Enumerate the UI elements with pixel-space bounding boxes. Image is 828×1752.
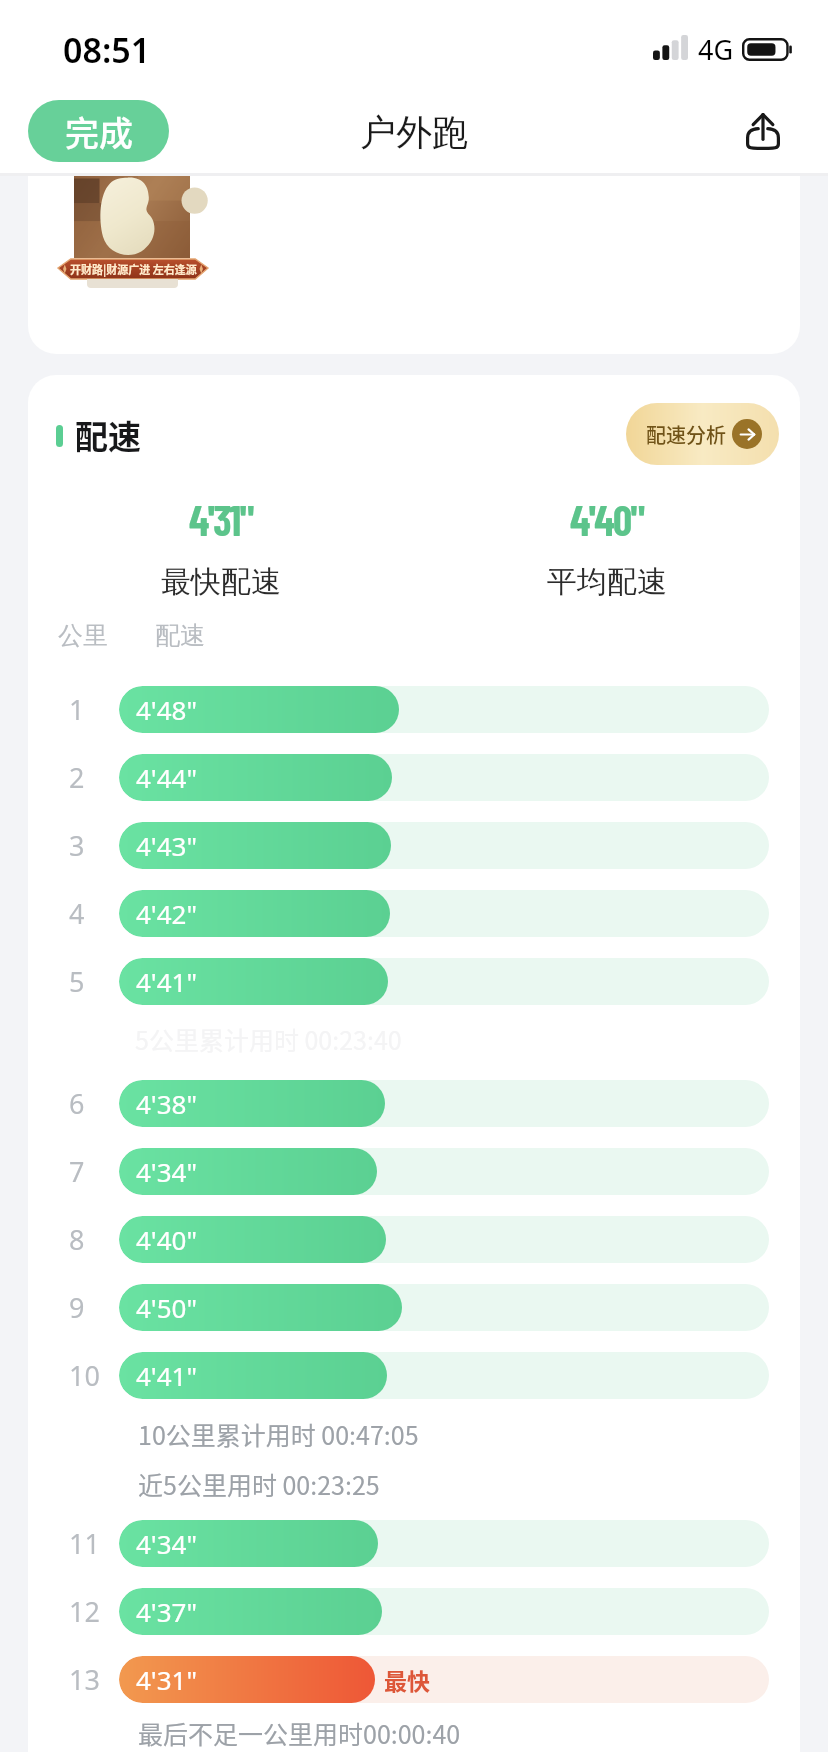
staticText: 配速 (155, 620, 205, 651)
staticText: 10 (69, 1357, 100, 1394)
button[interactable]: 9 (28, 1273, 800, 1341)
staticText: 4 (69, 895, 85, 932)
staticText: 4'40" (136, 1222, 198, 1257)
button[interactable]: 11 (28, 1509, 800, 1577)
button[interactable]: 12 (28, 1577, 800, 1645)
staticText: 4'43" (136, 828, 198, 863)
button[interactable]: 5 (28, 947, 800, 1015)
staticText: 最后不足一公里用时00:00:40 (138, 1715, 461, 1751)
button[interactable]: 1 (28, 675, 800, 743)
staticText: 4'44" (136, 760, 198, 795)
staticText: 10公里累计用时 00:47:05 (138, 1416, 419, 1452)
staticText: 4'41" (136, 964, 198, 999)
staticText: 5公里累计用时 00:23:40 (135, 1021, 402, 1057)
staticText: 11 (69, 1525, 100, 1562)
staticText: 平均配速 (547, 563, 667, 601)
staticText: 完成 (65, 107, 133, 156)
button[interactable]: 完成 (28, 100, 169, 162)
staticText: 近5公里用时 00:23:25 (138, 1466, 380, 1502)
button[interactable]: 13 (28, 1645, 800, 1713)
staticText: 4'50" (136, 1290, 198, 1325)
staticText: 4'41" (136, 1358, 198, 1393)
button[interactable]: Share (732, 100, 794, 162)
staticText: 08:51 (63, 27, 151, 73)
staticText: 4'48" (136, 692, 198, 727)
staticText: 5 (69, 963, 85, 1000)
staticText: 4'38" (136, 1086, 198, 1121)
button[interactable]: 4 (28, 879, 800, 947)
staticText: 配速 (75, 411, 141, 459)
button[interactable]: 7 (28, 1137, 800, 1205)
staticText: 7 (69, 1153, 85, 1190)
staticText: 12 (69, 1593, 100, 1630)
button[interactable]: 8 (28, 1205, 800, 1273)
staticText: 8 (69, 1221, 85, 1258)
button[interactable]: 6 (28, 1069, 800, 1137)
staticText: 4'31" (136, 1662, 198, 1697)
staticText: 4'31" (189, 494, 253, 544)
button[interactable]: 2 (28, 743, 800, 811)
staticText: 13 (69, 1661, 100, 1698)
staticText: 4'34" (136, 1526, 198, 1561)
staticText: 2 (69, 759, 85, 796)
staticText: 1 (69, 691, 85, 728)
staticText: 3 (69, 827, 85, 864)
staticText: 6 (69, 1085, 85, 1122)
staticText: 配速分析 (646, 420, 726, 449)
staticText: 最快 (384, 1663, 430, 1696)
button[interactable]: 3 (28, 811, 800, 879)
staticText: 4'34" (136, 1154, 198, 1189)
staticText: 4'37" (136, 1594, 198, 1629)
staticText: 9 (69, 1289, 85, 1326)
button[interactable]: 配速分析 (626, 403, 779, 465)
staticText: 最快配速 (161, 563, 281, 601)
staticText: 开财路|财源广进 左右逢源 (70, 261, 197, 277)
staticText: 4'42" (136, 896, 198, 931)
staticText: 4'40" (570, 494, 644, 544)
staticText: 公里 (58, 620, 108, 651)
button[interactable]: 10 (28, 1341, 800, 1409)
staticText: 4G (698, 31, 734, 68)
staticText: 户外跑 (360, 110, 468, 155)
